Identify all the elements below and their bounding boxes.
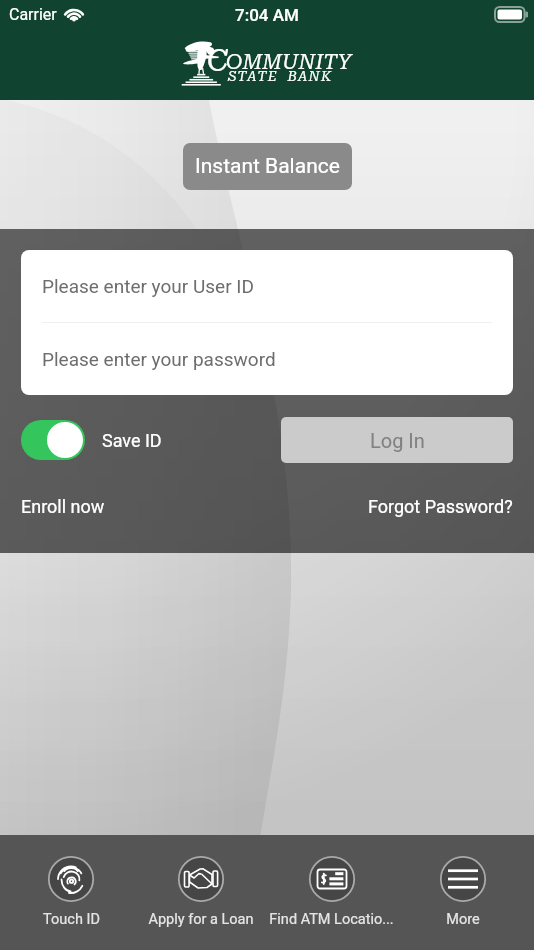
button[interactable]: Log In [281,417,513,463]
other: Touch ID [48,856,94,902]
other: Apply for a Loan [178,856,224,902]
button[interactable]: More [397,835,528,928]
staticText: Enroll now [21,496,105,517]
button[interactable]: Please enter your User ID [21,250,513,322]
staticText: Find ATM Locatio... [269,911,394,928]
staticText: 7:04 AM [235,5,299,25]
staticText: Instant Balance [195,154,340,179]
button[interactable]: Please enter your password [21,323,513,395]
staticText: Apply for a Loan [148,911,254,928]
staticText: Please enter your password [42,348,276,370]
staticText: OMMUNITY [226,50,352,75]
button[interactable]: Enroll now [21,496,105,517]
button[interactable]: Save ID [21,420,162,460]
button[interactable]: Apply for a Loan [136,835,266,928]
other: Battery [495,7,528,22]
button[interactable]: Find ATM Locations [266,835,397,928]
staticText: Forgot Password? [368,496,513,517]
other: More [440,856,486,902]
staticText: Touch ID [43,911,100,928]
button[interactable]: Touch ID [6,835,136,928]
staticText: More [446,911,480,928]
other: Find ATM Locations [309,856,355,902]
staticText: STATE BANK [228,68,333,84]
button[interactable]: Instant Balance [183,143,352,190]
staticText: Log In [370,429,425,452]
staticText: C [207,43,229,78]
staticText: Save ID [102,430,162,451]
staticText: Please enter your User ID [42,275,254,297]
other: Wifi [63,6,85,23]
staticText: Carrier [9,5,57,24]
button[interactable]: Forgot Password? [368,496,513,517]
